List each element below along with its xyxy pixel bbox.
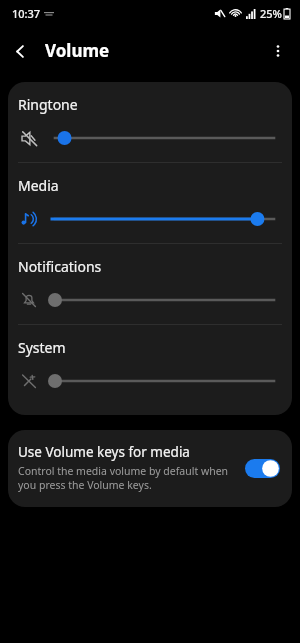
- button[interactable]: Notifications: [8, 244, 292, 324]
- staticText: 25%: [260, 6, 282, 21]
- staticText: System: [18, 338, 66, 357]
- button[interactable]: System: [8, 325, 292, 405]
- staticText: Control the media volume by default when…: [18, 464, 236, 492]
- button[interactable]: Media: [8, 163, 292, 243]
- staticText: Use Volume keys for media: [18, 443, 190, 461]
- button[interactable]: Navigate up: [0, 31, 40, 71]
- button[interactable]: Ringtone: [8, 82, 292, 162]
- staticText: Volume: [45, 39, 110, 62]
- staticText: Ringtone: [18, 95, 78, 114]
- staticText: Media: [18, 176, 59, 195]
- button[interactable]: More options: [256, 29, 300, 73]
- button[interactable]: Use Volume keys for media: [8, 430, 292, 507]
- staticText: Notifications: [18, 257, 102, 276]
- staticText: 10:37: [12, 6, 41, 21]
- button[interactable]: Use Volume keys for media toggle: [242, 455, 282, 481]
